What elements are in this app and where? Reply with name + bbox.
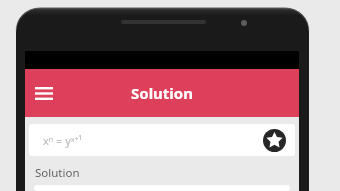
staticText: xⁿ = yˣ⁺¹ bbox=[43, 133, 83, 148]
staticText: Solution bbox=[35, 165, 80, 181]
staticText: Solution bbox=[131, 83, 193, 103]
button[interactable]: Favorite bbox=[263, 129, 286, 152]
button[interactable]: Open navigation menu bbox=[30, 79, 58, 107]
button[interactable]: xⁿ = yˣ⁺¹ bbox=[29, 124, 295, 156]
